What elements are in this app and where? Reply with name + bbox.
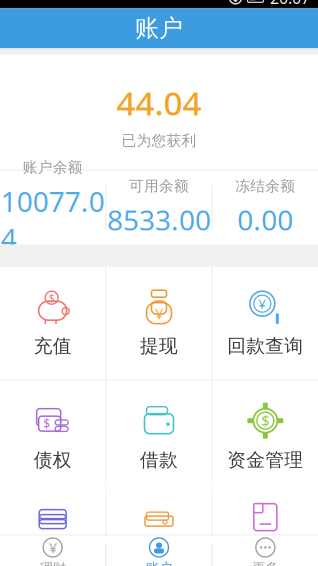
button[interactable]: $ <box>213 381 318 494</box>
staticText: 冻结余额 <box>235 177 295 195</box>
staticText: 已为您获利 <box>121 132 196 150</box>
staticText: $ <box>49 291 55 305</box>
button[interactable]: ¥ <box>0 536 105 566</box>
button[interactable]: ¥ <box>106 267 212 380</box>
staticText: ¥ <box>155 304 163 323</box>
button[interactable]: $ <box>0 267 105 380</box>
button[interactable]: ¥ <box>213 267 318 380</box>
staticText: ¥ <box>258 295 266 312</box>
staticText: $ <box>261 411 269 430</box>
staticText: 债权 <box>34 449 72 472</box>
staticText: 提现 <box>140 335 178 358</box>
staticText: 8533.00 <box>107 201 211 238</box>
button[interactable]: $ <box>0 381 105 494</box>
staticText: 可用余额 <box>129 177 189 195</box>
staticText: 账户 <box>146 560 172 566</box>
button[interactable]: 更多 <box>213 536 318 566</box>
staticText: 20:07 <box>270 0 310 8</box>
staticText: 44.04 <box>116 80 201 125</box>
staticText: $ <box>43 416 50 432</box>
staticText: 理财 <box>40 560 66 566</box>
button[interactable]: 借款 <box>106 381 212 494</box>
staticText: 0.00 <box>237 201 293 238</box>
staticText: 账户 <box>135 14 183 43</box>
staticText: ¥ <box>49 538 57 557</box>
button[interactable]: 账户 <box>106 536 212 566</box>
staticText: 充值 <box>34 335 72 358</box>
staticText: 回款查询 <box>227 335 303 358</box>
staticText: 更多 <box>252 560 278 566</box>
staticText: 账户余额 <box>23 158 83 176</box>
staticText: 借款 <box>140 449 178 472</box>
staticText: 资金管理 <box>227 449 303 472</box>
staticText: 10077.04 <box>1 182 105 257</box>
